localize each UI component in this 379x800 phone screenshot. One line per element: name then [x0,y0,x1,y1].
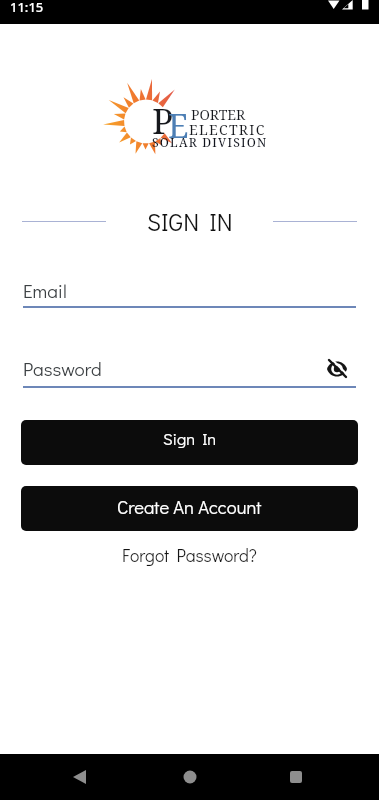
staticText: Sign In [163,428,217,450]
button[interactable]: Sign In [21,420,358,465]
staticText: Forgot Password? [122,544,257,567]
staticText: SIGN IN [147,206,233,237]
staticText: PORTER [191,105,246,124]
staticText: Email [23,278,67,303]
button[interactable] [282,763,310,791]
button[interactable] [66,763,94,791]
button[interactable]: Forgot Password? [122,544,257,567]
staticText: E [168,103,189,148]
staticText: P [152,97,174,145]
button[interactable]: Password [23,356,356,388]
button[interactable]: Create An Account [21,486,358,531]
staticText: Password [23,356,102,381]
staticText: 11:15 [10,0,44,16]
button[interactable]: Email [23,278,356,308]
button[interactable] [325,357,349,381]
staticText: ELECTRIC [189,120,266,139]
staticText: Create An Account [117,495,262,519]
button[interactable] [176,763,204,791]
staticText: SOLAR DIVISION [152,134,268,150]
